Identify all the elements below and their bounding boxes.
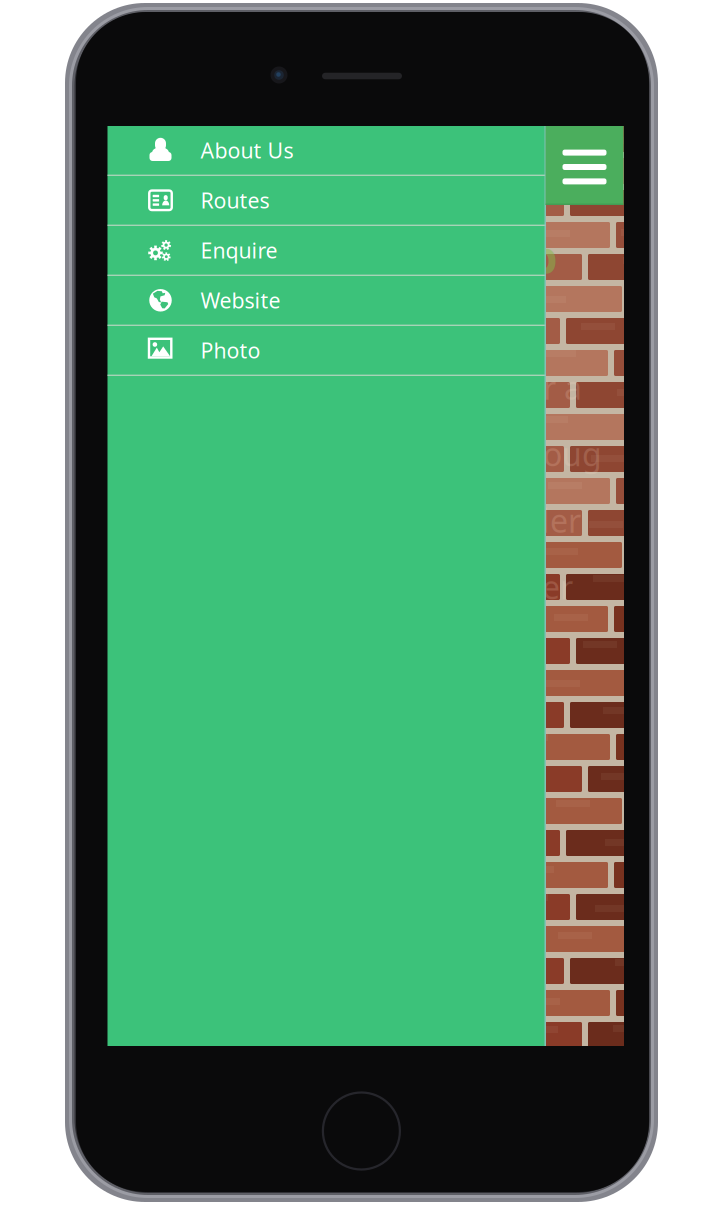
staticText: order [498,499,581,542]
button[interactable]: About Us [107,126,546,176]
staticText: safer [498,566,573,608]
button[interactable]: Website [107,276,546,326]
button[interactable]: Enquire [107,226,546,276]
staticText: Enquire [200,236,277,264]
button[interactable]: Routes [107,176,546,226]
staticText: Our a [498,366,582,409]
staticText: Photo [200,336,260,364]
staticText: Routes [200,186,269,214]
button[interactable]: Menu [545,126,623,205]
button[interactable]: Photo [107,326,546,376]
staticText: About Us [200,136,293,164]
staticText: Ab [498,226,558,286]
staticText: throug [498,433,602,475]
staticText: Website [200,286,280,314]
